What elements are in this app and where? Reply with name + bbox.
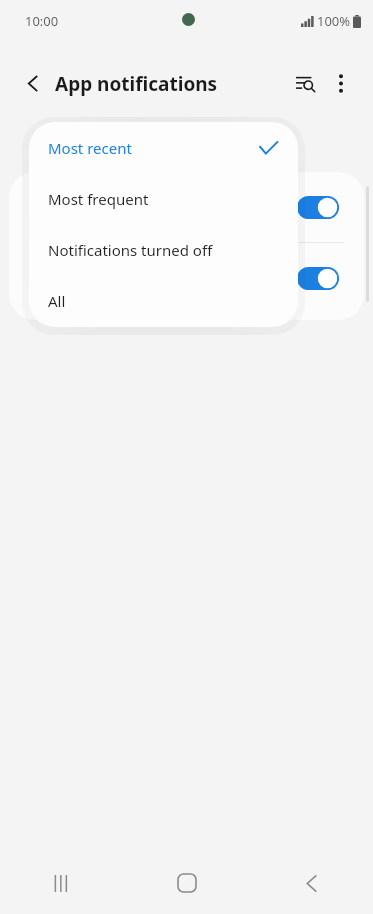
button[interactable]: Toggle on — [297, 196, 339, 219]
staticText: All — [48, 291, 66, 311]
button[interactable]: Home — [125, 852, 249, 914]
staticText: Most frequent — [48, 189, 149, 209]
button[interactable]: Search — [286, 64, 324, 102]
staticText: 10:00 — [25, 12, 59, 30]
button[interactable]: Notifications turned off — [29, 224, 298, 275]
button[interactable]: Toggle on — [9, 243, 364, 313]
button[interactable]: Back — [14, 64, 52, 102]
button[interactable]: More options — [322, 64, 360, 102]
button[interactable]: Recent apps — [0, 852, 125, 914]
button[interactable]: Toggle on — [9, 172, 364, 242]
button[interactable]: Most recent — [29, 122, 298, 173]
staticText: Most recent — [48, 138, 132, 158]
button[interactable]: Back — [249, 852, 373, 914]
staticText: Notifications turned off — [48, 240, 213, 260]
staticText: 100% — [317, 12, 351, 30]
button[interactable]: Most frequent — [29, 173, 298, 224]
staticText: App notifications — [55, 71, 218, 97]
button[interactable]: All — [29, 275, 298, 326]
button[interactable]: Toggle on — [297, 267, 339, 290]
